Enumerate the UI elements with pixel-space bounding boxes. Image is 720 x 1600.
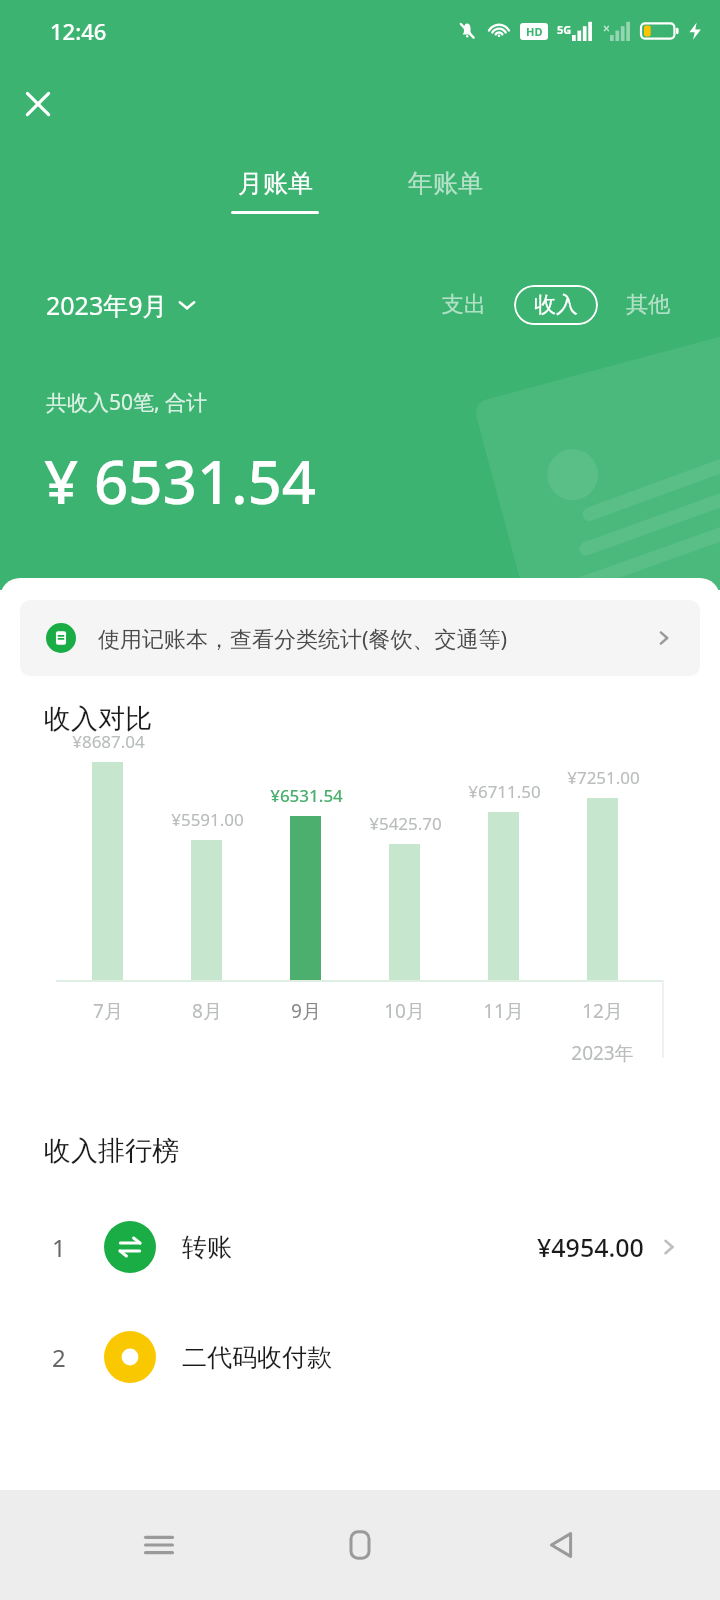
- button[interactable]: 收入: [514, 285, 598, 325]
- staticText: 10月: [384, 998, 425, 1024]
- button[interactable]: Home: [318, 1503, 402, 1587]
- staticText: 使用记账本，查看分类统计(餐饮、交通等): [98, 623, 508, 653]
- staticText: 收入对比: [44, 702, 152, 736]
- staticText: 共收入50笔, 合计: [46, 388, 208, 417]
- staticText: ¥7251.00: [567, 766, 640, 789]
- staticText: 2023年9月: [46, 288, 168, 322]
- staticText: 5G: [557, 22, 572, 37]
- staticText: 年账单: [408, 168, 483, 199]
- staticText: ¥5425.70: [369, 812, 442, 835]
- staticText: ¥4954.00: [537, 1230, 644, 1264]
- staticText: 收入排行榜: [44, 1134, 179, 1168]
- staticText: 1: [52, 1231, 66, 1264]
- button[interactable]: Recents: [117, 1503, 201, 1587]
- staticText: HD: [526, 24, 543, 39]
- staticText: 收入: [534, 291, 578, 319]
- staticText: 8月: [192, 998, 222, 1024]
- staticText: ¥6711.50: [468, 780, 541, 803]
- staticText: ¥6531.54: [270, 784, 343, 807]
- staticText: ×: [603, 20, 610, 36]
- button[interactable]: 其他: [618, 285, 678, 325]
- staticText: ¥5591.00: [171, 808, 244, 831]
- staticText: 2: [52, 1341, 66, 1374]
- button[interactable]: 2: [0, 1316, 720, 1398]
- staticText: 二代码收付款: [182, 1342, 332, 1373]
- staticText: 2023年: [571, 1040, 634, 1066]
- button[interactable]: 年账单: [395, 168, 495, 214]
- staticText: ¥8687.04: [72, 730, 145, 753]
- staticText: 12月: [582, 998, 623, 1024]
- staticText: 月账单: [238, 168, 313, 199]
- staticText: 转账: [182, 1232, 232, 1263]
- staticText: 9月: [291, 998, 321, 1024]
- button[interactable]: Back: [519, 1503, 603, 1587]
- staticText: 11月: [483, 998, 524, 1024]
- button[interactable]: 2023年9月: [46, 282, 196, 328]
- button[interactable]: 月账单: [225, 168, 325, 214]
- button[interactable]: Close: [12, 78, 64, 130]
- staticText: 12:46: [50, 16, 107, 46]
- staticText: 7月: [93, 998, 123, 1024]
- staticText: ¥ 6531.54: [44, 440, 317, 522]
- button[interactable]: 支出: [434, 285, 494, 325]
- button[interactable]: 1: [0, 1206, 720, 1288]
- button[interactable]: 使用记账本，查看分类统计(餐饮、交通等): [20, 600, 700, 676]
